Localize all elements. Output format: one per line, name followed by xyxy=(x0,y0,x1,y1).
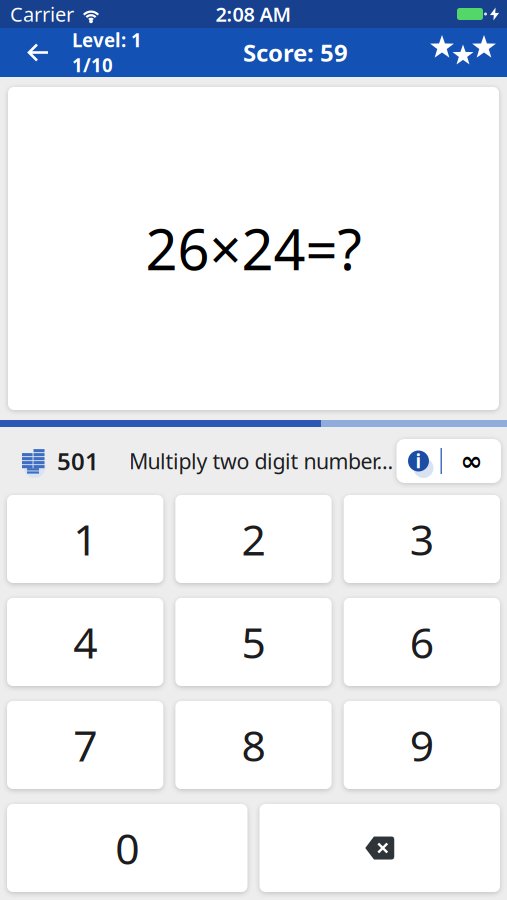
staticText: Level: 1 xyxy=(72,28,142,52)
staticText: 2 xyxy=(241,511,265,567)
staticText: ∞ xyxy=(460,446,482,476)
staticText: Multiply two digit number... xyxy=(129,447,393,475)
button[interactable]: Delete xyxy=(259,804,500,892)
button[interactable]: 3 xyxy=(344,495,500,583)
button[interactable]: 9 xyxy=(344,701,500,789)
button[interactable]: 5 xyxy=(175,598,332,686)
staticText: 0 xyxy=(115,820,139,876)
button[interactable]: Back xyxy=(0,43,72,61)
button[interactable]: 0 xyxy=(7,804,247,892)
staticText: Carrier xyxy=(10,1,74,27)
staticText: 8 xyxy=(241,717,265,773)
button[interactable]: 6 xyxy=(344,598,500,686)
button[interactable]: 7 xyxy=(7,701,163,789)
staticText: 3 xyxy=(410,511,434,567)
staticText: 6 xyxy=(410,614,434,670)
staticText: 1 xyxy=(73,511,97,567)
button[interactable]: 8 xyxy=(175,701,332,789)
staticText: Score: 59 xyxy=(243,37,348,68)
staticText: 2:08 AM xyxy=(215,1,291,27)
button[interactable]: Hint xyxy=(396,439,440,483)
button[interactable]: 1 xyxy=(7,495,163,583)
button[interactable]: 2 xyxy=(175,495,332,583)
button[interactable]: 4 xyxy=(7,598,163,686)
staticText: 4 xyxy=(73,614,97,670)
staticText: 5 xyxy=(241,614,265,670)
staticText: 9 xyxy=(410,717,434,773)
staticText: 26×24=? xyxy=(145,211,361,286)
staticText: i xyxy=(415,449,421,473)
staticText: 7 xyxy=(73,717,97,773)
staticText: 501 xyxy=(57,445,99,477)
button[interactable]: Unlimited time xyxy=(442,439,501,483)
staticText: 1/10 xyxy=(72,52,113,77)
